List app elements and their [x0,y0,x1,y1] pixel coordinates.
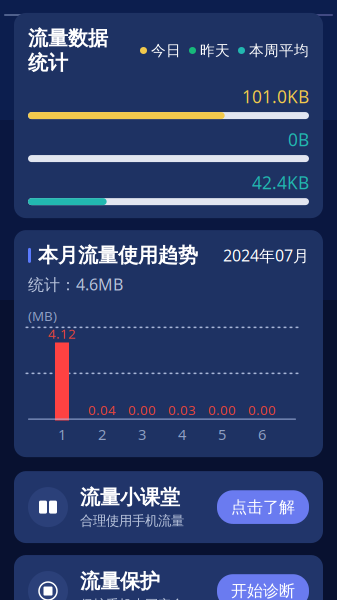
staticText: 6 [258,425,266,444]
staticText: 本月流量使用趋势 [38,243,198,268]
staticText: 今日 [151,41,181,59]
staticText: 流量数据统计 [28,26,108,75]
staticText: 0.04 [88,401,116,419]
staticText: (MB) [28,307,57,325]
staticText: 统计：4.6MB [28,274,123,295]
staticText: 0.00 [208,401,236,419]
staticText: 2024年07月 [223,245,309,266]
staticText: 昨天 [200,41,230,59]
staticText: 本周平均 [249,41,309,59]
button[interactable]: 开始诊断 [217,574,309,600]
staticText: 点击了解 [231,497,295,517]
staticText: 4.12 [48,325,76,342]
staticText: 0.00 [128,401,156,419]
staticText: 流量保护 [80,569,160,594]
staticText: 42.4KB [252,171,309,194]
staticText: 0.00 [248,401,276,419]
button[interactable]: 点击了解 [217,490,309,524]
staticText: 2 [98,425,106,444]
staticText: 开始诊断 [231,581,295,600]
staticText: 保护手机上网安全 [80,597,184,600]
staticText: 5 [218,425,226,444]
staticText: 3 [138,425,146,444]
staticText: 1 [58,425,66,444]
staticText: 合理使用手机流量 [80,513,184,529]
staticText: 101.0KB [242,85,309,108]
staticText: 4 [178,425,186,444]
staticText: 流量小课堂 [80,485,180,510]
staticText: 0B [288,128,309,151]
staticText: 0.03 [168,401,196,419]
